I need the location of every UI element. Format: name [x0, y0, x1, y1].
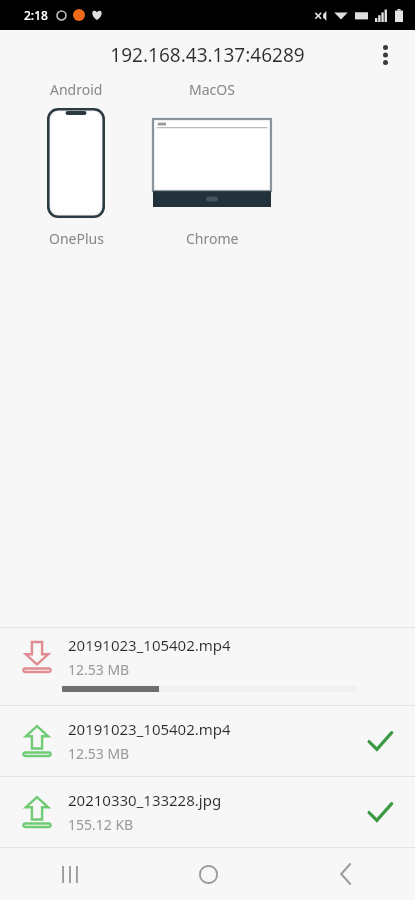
staticText: 12.53 MB	[68, 744, 130, 763]
staticText: 12.53 MB	[68, 660, 130, 679]
button[interactable]: Back	[277, 848, 415, 900]
staticText: 20191023_105402.mp4	[68, 719, 231, 739]
button[interactable]: MacOS Chrome device	[142, 80, 282, 248]
button[interactable]: Android OnePlus device	[10, 80, 142, 248]
button[interactable]: More options	[363, 33, 407, 77]
button[interactable]: 20210330_133228.jpg	[0, 777, 415, 847]
staticText: 2:18	[24, 7, 48, 23]
button[interactable]: 20191023_105402.mp4	[0, 628, 415, 705]
staticText: 20210330_133228.jpg	[68, 790, 222, 810]
button[interactable]: Home	[139, 848, 277, 900]
staticText: OnePlus	[49, 229, 104, 248]
staticText: 20191023_105402.mp4	[68, 635, 231, 655]
staticText: 192.168.43.137:46289	[110, 42, 305, 68]
staticText: Chrome	[186, 229, 239, 248]
button[interactable]: 20191023_105402.mp4	[0, 706, 415, 776]
staticText: Android	[50, 80, 103, 99]
staticText: MacOS	[189, 80, 235, 99]
staticText: 155.12 KB	[68, 815, 134, 834]
button[interactable]: Recent apps	[0, 848, 139, 900]
